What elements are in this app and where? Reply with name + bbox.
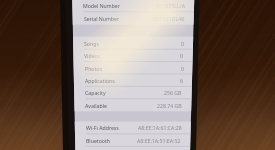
staticText: 228.74 GB [157, 102, 182, 109]
staticText: Videos [84, 52, 101, 59]
staticText: Photos [85, 65, 102, 72]
button[interactable]: Capacity [85, 86, 182, 98]
staticText: Wi-Fi Address [86, 124, 119, 131]
staticText: Available [85, 102, 107, 109]
staticText: Capacity [85, 89, 106, 96]
staticText: 256 GB [164, 89, 182, 96]
button[interactable]: Applications [85, 74, 183, 86]
staticText: A8:EE:1A:51:EA:52 [137, 137, 181, 144]
button[interactable]: Available [85, 99, 182, 112]
staticText: Songs [84, 40, 99, 47]
button[interactable]: Wi-Fi Address [86, 121, 182, 133]
staticText: Applications [85, 77, 115, 84]
button[interactable]: Photos [85, 62, 184, 74]
staticText: 0 [181, 65, 184, 72]
staticText: 6 [180, 77, 183, 84]
staticText: A8:EE:1A:61:CA:28 [138, 124, 182, 131]
staticText: Model Number [83, 2, 120, 9]
staticText: MYM73LL/A [156, 2, 185, 9]
staticText: 0 [180, 52, 183, 59]
button[interactable]: Bluetooth [86, 134, 181, 146]
button[interactable]: Songs [84, 37, 184, 49]
button[interactable]: Serial Number [84, 12, 185, 25]
button[interactable]: Videos [84, 49, 183, 61]
staticText: 0 [181, 40, 184, 47]
staticText: Bluetooth [86, 137, 111, 144]
staticText: Serial Number [84, 15, 120, 22]
button[interactable]: Model Number [83, 0, 185, 12]
staticText: GDC631DL4K [152, 15, 185, 22]
